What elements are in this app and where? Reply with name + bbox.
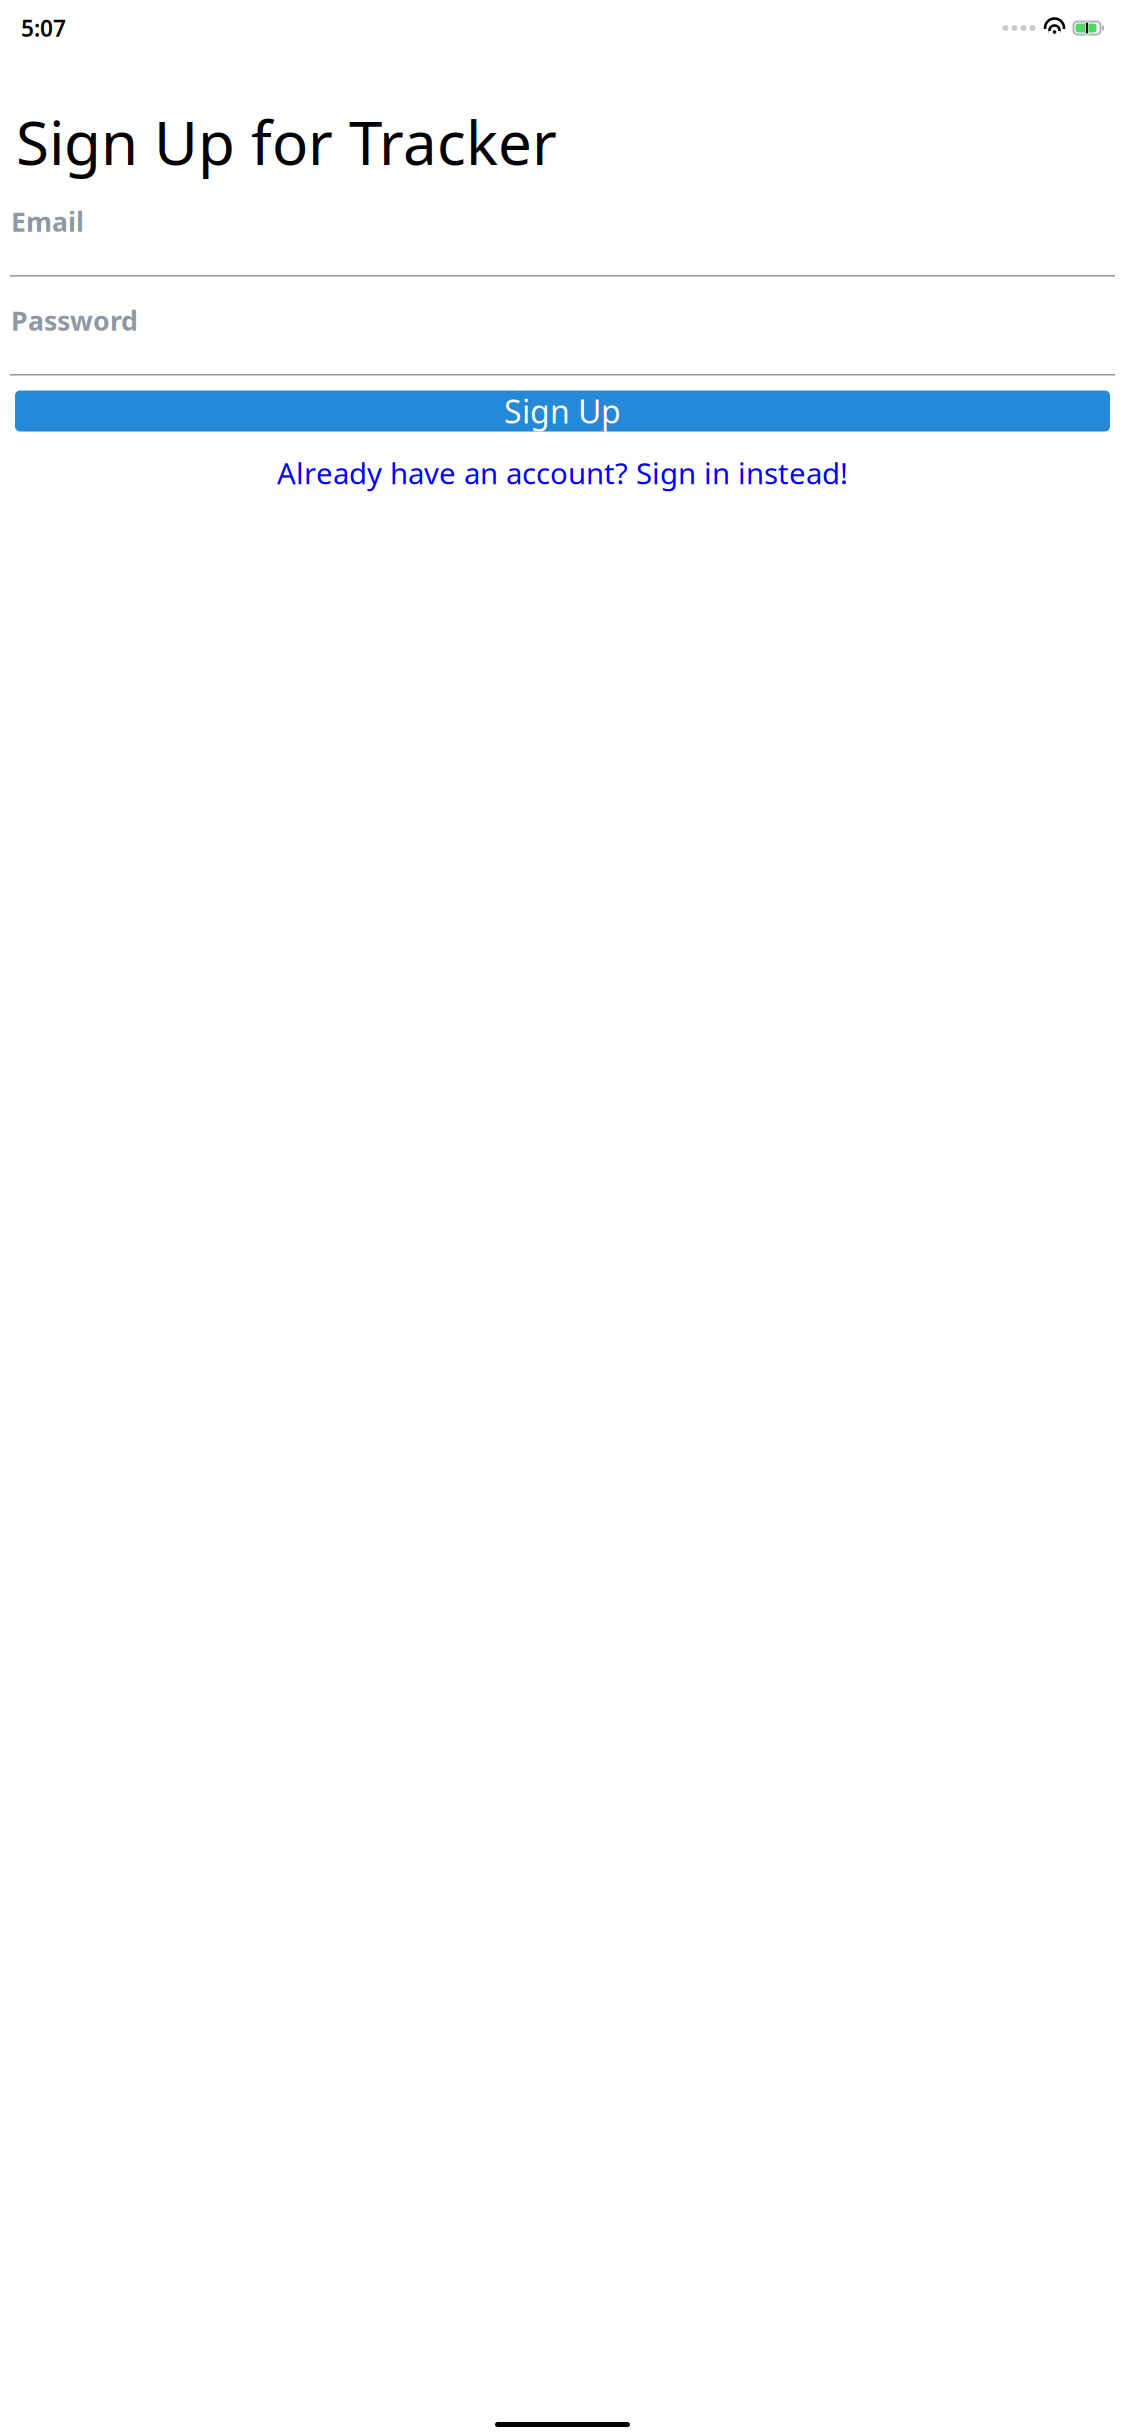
staticText: 5:07 bbox=[21, 13, 66, 43]
staticText: Password bbox=[11, 303, 138, 338]
staticText: Email bbox=[11, 204, 84, 239]
button[interactable]: Sign Up bbox=[15, 390, 1110, 431]
staticText: Sign Up for Tracker bbox=[16, 102, 557, 182]
staticText: Sign Up bbox=[504, 390, 621, 432]
button[interactable]: Already have an account? Sign in instead… bbox=[0, 453, 1125, 492]
staticText: Already have an account? Sign in instead… bbox=[277, 453, 848, 492]
